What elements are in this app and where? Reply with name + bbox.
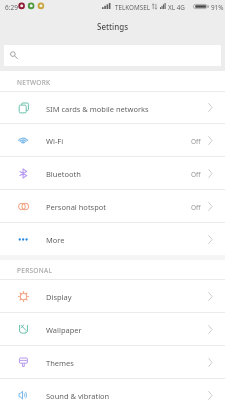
staticText: Display	[46, 292, 208, 302]
staticText: Off	[191, 203, 201, 212]
staticText: 91%	[211, 3, 224, 12]
staticText: Themes	[46, 358, 208, 368]
button[interactable]: Wi-Fi	[0, 124, 225, 157]
button[interactable]: Display	[0, 280, 225, 313]
staticText: Off	[191, 170, 201, 179]
button[interactable]: Sound & vibration	[0, 379, 225, 400]
staticText: XL 4G	[168, 3, 185, 12]
staticText: Off	[191, 137, 201, 146]
button[interactable]: SIM cards & mobile networks	[0, 92, 225, 124]
staticText: 6:29	[5, 3, 18, 12]
staticText: TELKOMSEL	[115, 3, 150, 12]
staticText: SIM cards & mobile networks	[46, 104, 208, 114]
staticText: Sound & vibration	[46, 391, 208, 400]
button[interactable]: Search settings	[4, 45, 221, 66]
staticText: Personal hotspot	[46, 202, 191, 212]
button[interactable]: More	[0, 223, 225, 255]
staticText: Settings	[97, 21, 129, 32]
button[interactable]: Wallpaper	[0, 313, 225, 346]
staticText: Wallpaper	[46, 325, 208, 335]
staticText: More	[46, 235, 208, 245]
button[interactable]: Themes	[0, 346, 225, 379]
staticText: NETWORK	[17, 78, 51, 87]
staticText: Wi-Fi	[46, 136, 191, 146]
staticText: PERSONAL	[17, 266, 53, 275]
button[interactable]: Bluetooth	[0, 157, 225, 190]
button[interactable]: Personal hotspot	[0, 190, 225, 223]
staticText: Bluetooth	[46, 169, 191, 179]
